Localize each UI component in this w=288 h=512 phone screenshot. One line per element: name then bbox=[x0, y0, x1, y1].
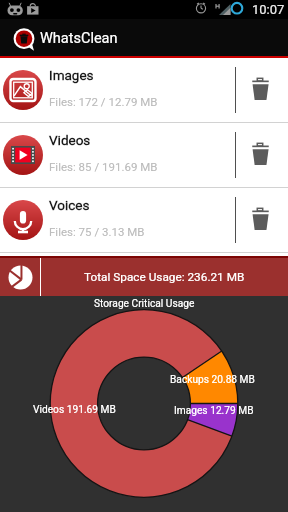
button[interactable]: Delete Videos bbox=[236, 123, 288, 187]
staticText: Storage Critical Usage bbox=[94, 298, 195, 310]
button[interactable]: Delete Images bbox=[236, 58, 288, 122]
staticText: Files: 172 / 12.79 MB bbox=[49, 95, 158, 108]
button[interactable]: Videos bbox=[0, 123, 288, 187]
staticText: Images 12.79 MB bbox=[174, 405, 254, 417]
button[interactable]: Total Space Usage: 236.21 MB bbox=[0, 258, 288, 296]
staticText: Voices bbox=[49, 197, 90, 213]
button[interactable]: Images bbox=[0, 58, 288, 122]
staticText: Files: 85 / 191.69 MB bbox=[49, 160, 158, 173]
staticText: Backups 20.88 MB bbox=[170, 374, 255, 386]
staticText: 10:07 bbox=[252, 2, 285, 17]
staticText: Videos 191.69 MB bbox=[33, 404, 116, 416]
staticText: Files: 75 / 3.13 MB bbox=[49, 225, 145, 238]
staticText: WhatsClean bbox=[40, 30, 118, 47]
button[interactable]: Delete Voices bbox=[236, 188, 288, 252]
staticText: Total Space Usage: 236.21 MB bbox=[84, 270, 245, 284]
button[interactable]: WhatsClean logo bbox=[0, 19, 39, 56]
staticText: Images bbox=[49, 67, 94, 83]
staticText: Videos bbox=[49, 132, 91, 148]
button[interactable]: Voices bbox=[0, 188, 288, 252]
